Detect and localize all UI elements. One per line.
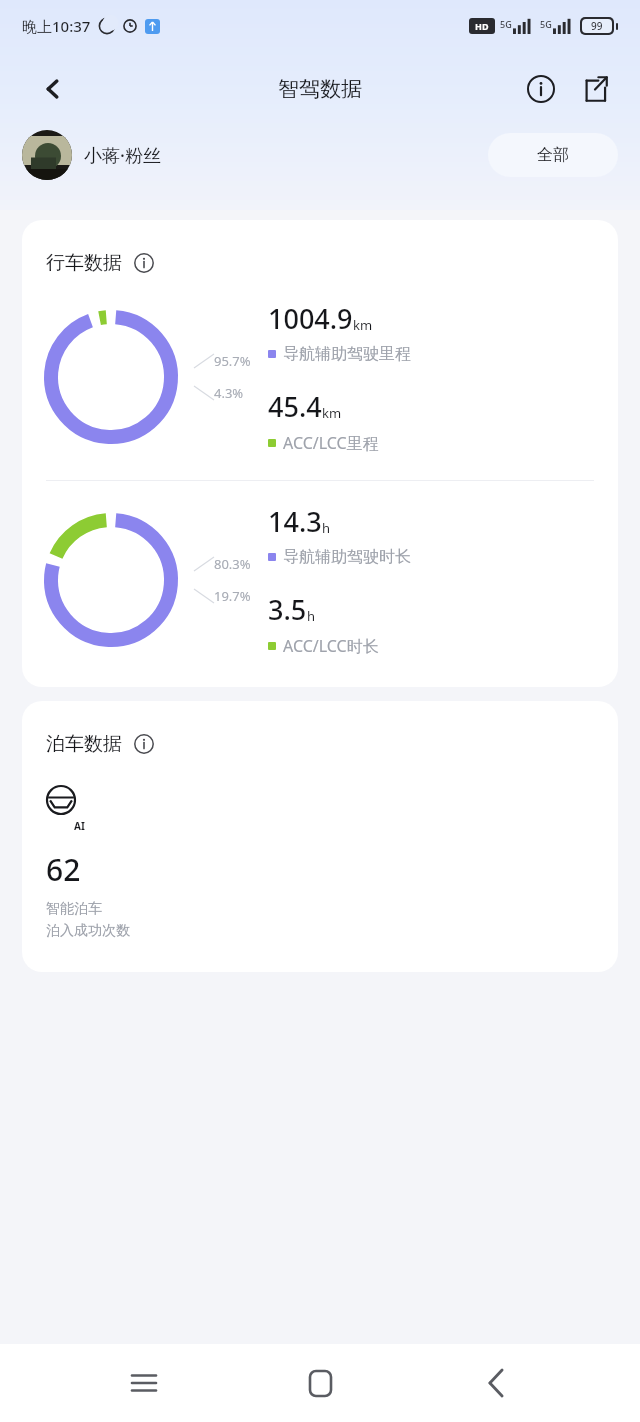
staticText: 晚上10:37 — [22, 16, 91, 36]
button[interactable]: 泊车数据 — [22, 701, 618, 972]
staticText: 19.7% — [214, 587, 251, 605]
staticText: 导航辅助驾驶时长 — [283, 547, 411, 567]
staticText: 1004.9 — [268, 300, 353, 337]
staticText: 行车数据 — [46, 251, 122, 275]
staticText: 80.3% — [214, 555, 251, 573]
button[interactable]: 泊车数据 info — [131, 731, 157, 757]
staticText: 45.4 — [268, 388, 322, 425]
staticText: 3.5 — [268, 591, 307, 628]
staticText: 99 — [591, 19, 603, 33]
staticText: h — [322, 519, 331, 537]
button[interactable]: Recents — [112, 1351, 176, 1415]
button[interactable]: Back — [464, 1351, 528, 1415]
button[interactable]: Avatar — [22, 130, 72, 180]
staticText: 5G — [500, 18, 512, 30]
staticText: ACC/LCC时长 — [283, 635, 379, 657]
staticText: 泊入成功次数 — [46, 922, 130, 940]
staticText: km — [322, 404, 342, 422]
staticText: 14.3 — [268, 503, 322, 540]
button[interactable]: Share — [572, 66, 618, 112]
button[interactable]: Home — [288, 1351, 352, 1415]
button[interactable]: 行车数据 — [22, 220, 618, 687]
button[interactable]: 全部 — [488, 133, 618, 177]
staticText: 智能泊车 — [46, 900, 102, 918]
staticText: 5G — [540, 18, 552, 30]
staticText: 小蒋·粉丝 — [84, 143, 161, 168]
button[interactable]: Back — [30, 66, 76, 112]
staticText: 95.7% — [214, 352, 251, 370]
button[interactable]: Info — [518, 66, 564, 112]
staticText: ACC/LCC里程 — [283, 432, 379, 454]
staticText: km — [353, 316, 373, 334]
staticText: 导航辅助驾驶里程 — [283, 344, 411, 364]
staticText: h — [307, 607, 316, 625]
staticText: 泊车数据 — [46, 732, 122, 756]
staticText: AI — [74, 819, 85, 833]
staticText: 62 — [46, 849, 81, 890]
staticText: HD — [475, 20, 489, 32]
button[interactable]: 行车数据 info — [131, 250, 157, 276]
staticText: 全部 — [537, 145, 569, 165]
staticText: 4.3% — [214, 384, 244, 402]
staticText: 智驾数据 — [278, 76, 362, 102]
